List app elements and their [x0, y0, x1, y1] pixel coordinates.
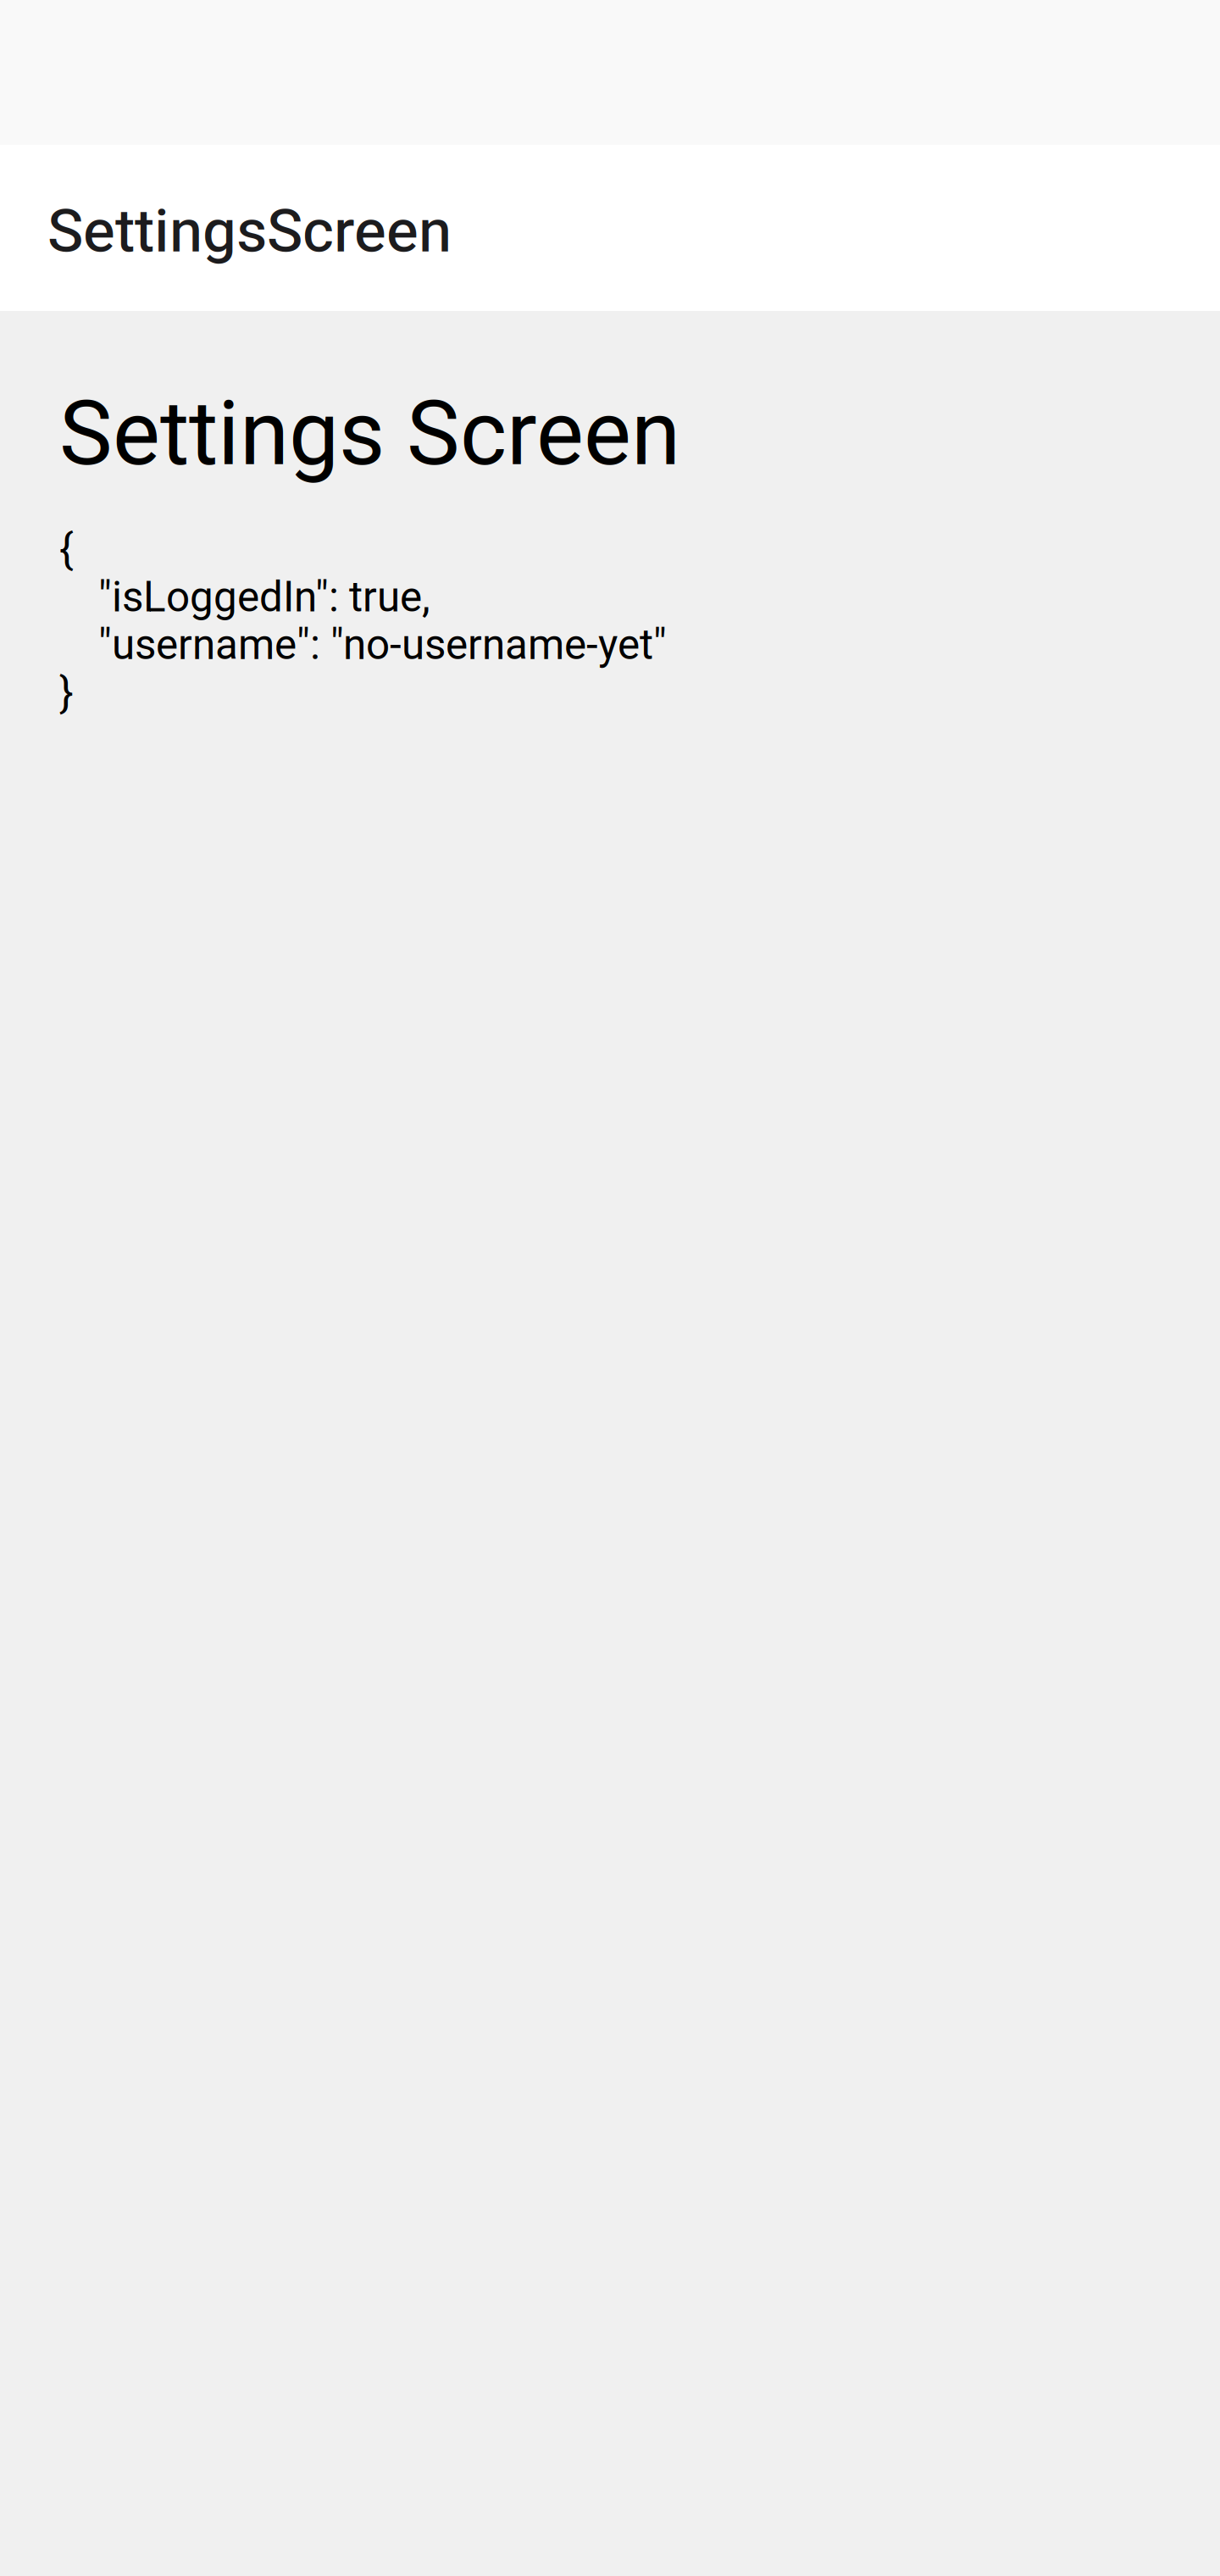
staticText: SettingsScreen: [47, 196, 452, 266]
staticText: "username": "no-username-yet": [98, 620, 667, 669]
staticText: {: [59, 525, 74, 574]
staticText: }: [59, 668, 74, 717]
staticText: Settings Screen: [59, 381, 680, 486]
button[interactable]: SettingsScreen: [47, 196, 452, 266]
staticText: "isLoggedIn": true,: [98, 573, 430, 622]
